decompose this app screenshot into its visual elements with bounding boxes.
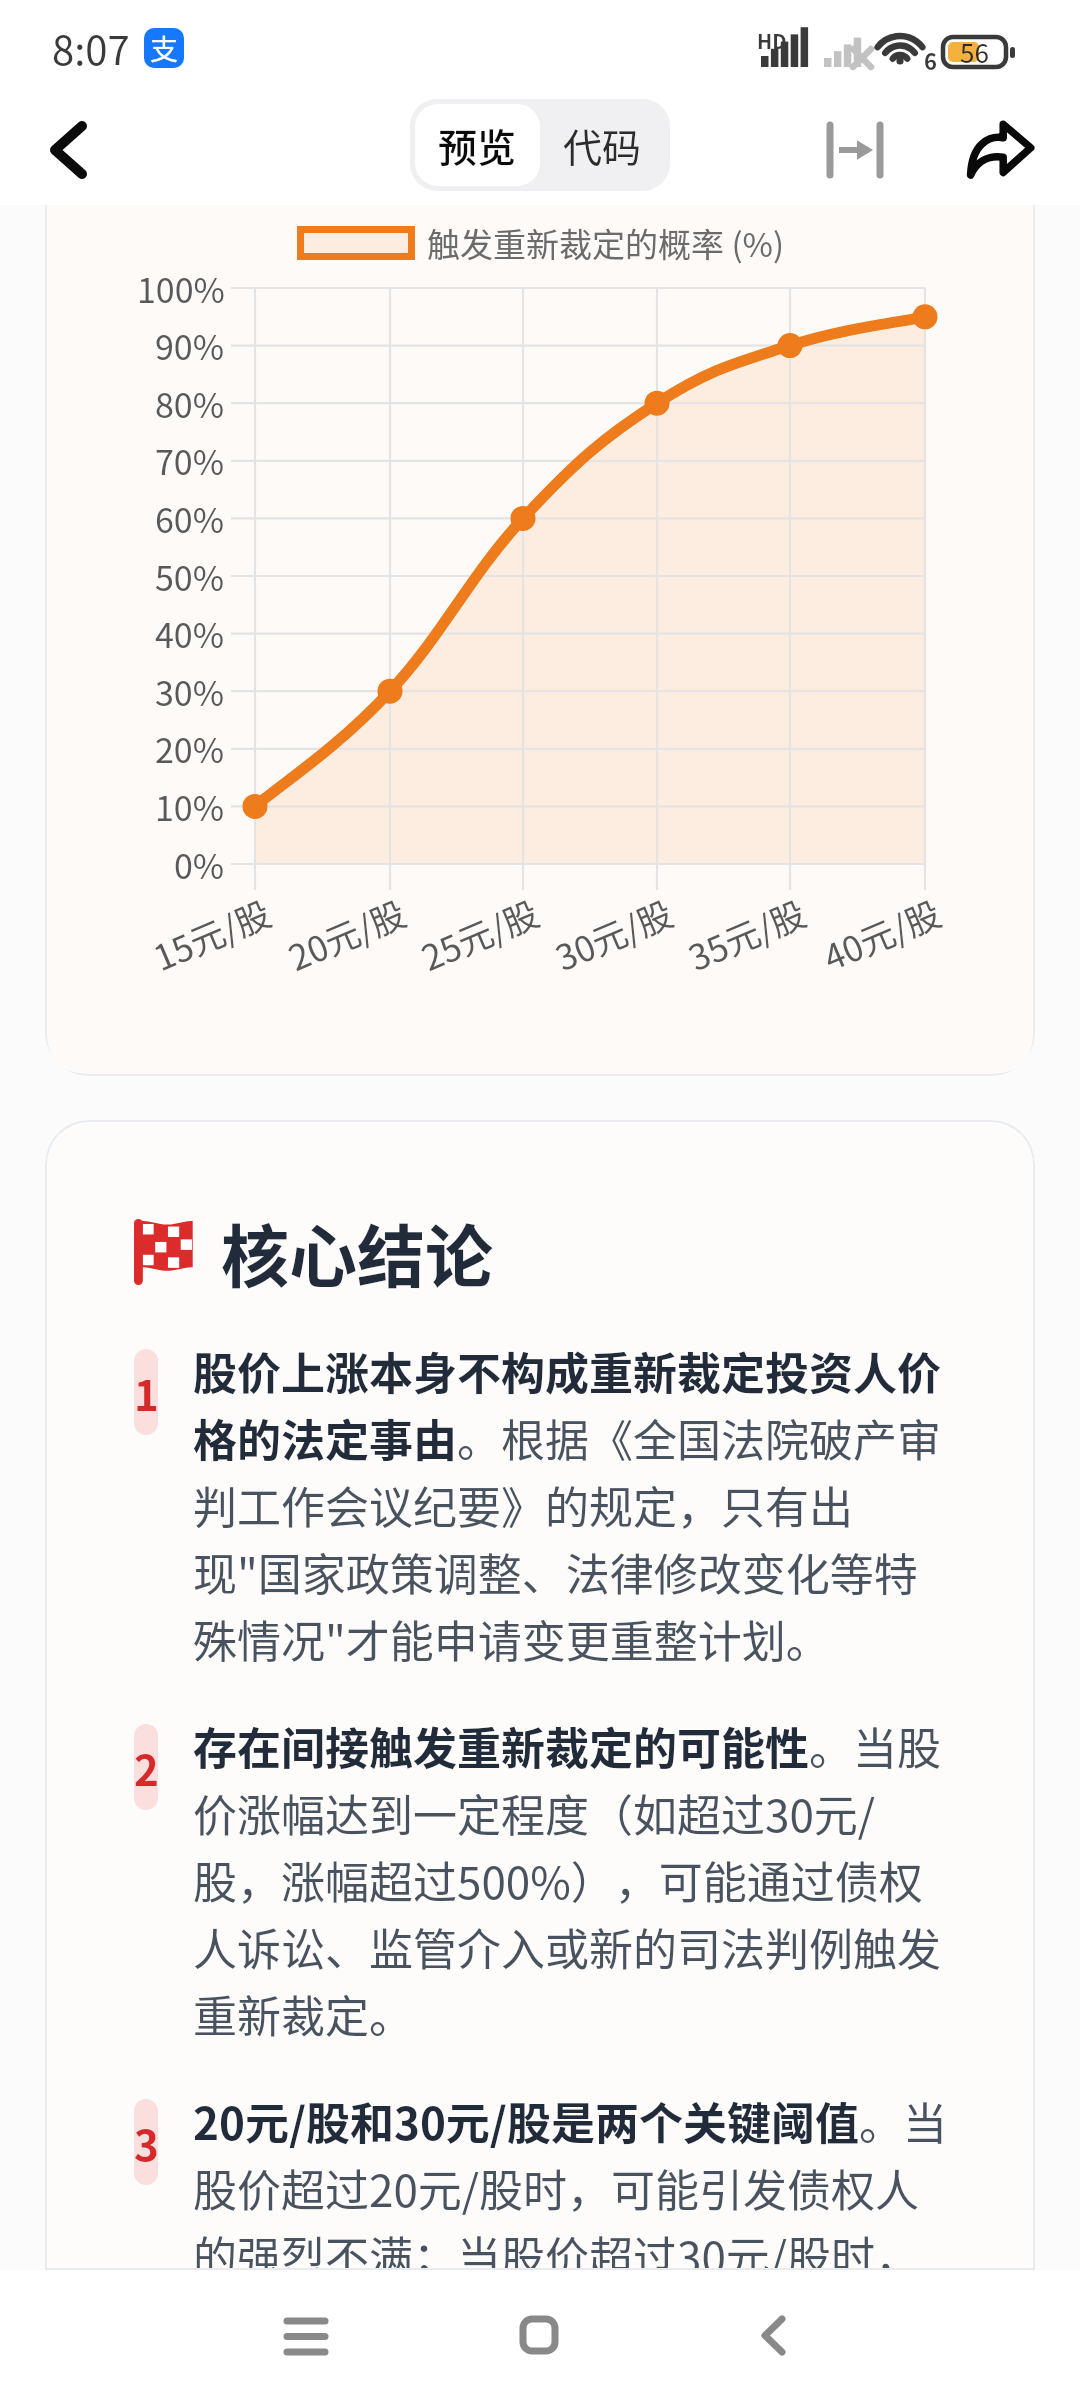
staticText: 存在间接触发重新裁定的可能性。当股价涨幅达到一定程度（如超过30元/股，涨幅超过… [193,1711,952,2046]
staticText: 预览 [438,117,517,173]
button[interactable]: Share [954,104,1046,196]
button[interactable]: 预览 [415,104,540,186]
staticText: 股价上涨本身不构成重新裁定投资人价格的法定事由。根据《全国法院破产审判工作会议纪… [193,1336,952,1671]
button[interactable]: 代码 [540,104,665,186]
button[interactable]: Back [22,104,114,196]
staticText: 代码 [563,117,642,173]
staticText: 2 [134,1737,158,1798]
staticText: 3 [134,2112,158,2173]
staticText: 20元/股和30元/股是两个关键阈值。当股价超过20元/股时，可能引发债权人的强… [193,2086,952,2270]
button[interactable]: Home [474,2270,604,2400]
staticText: 核心结论 [221,1203,494,1301]
staticText: 支 [150,28,179,68]
button[interactable]: Fit width [809,104,901,196]
button[interactable]: Back [708,2270,838,2400]
staticText: 8:07 [52,19,130,77]
staticText: 1 [134,1362,158,1423]
button[interactable]: Recent apps [241,2270,371,2400]
